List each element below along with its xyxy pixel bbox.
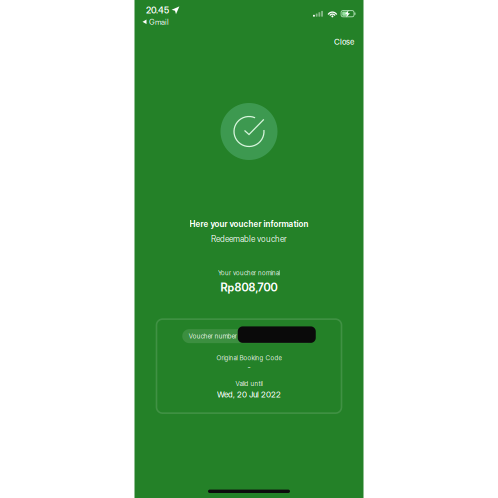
staticText: Close [334,37,354,47]
button[interactable]: Close [328,32,360,52]
staticText: Original Booking Code [216,354,281,362]
staticText: - [247,363,250,372]
staticText: Rp808,700 [220,281,277,294]
staticText: Valid until [235,380,262,388]
staticText: Here your voucher information [189,219,308,229]
staticText: Redeemable voucher [211,234,287,244]
staticText: Gmail [149,17,169,26]
staticText: 20.45 [146,5,169,16]
staticText: Voucher number : [189,332,240,340]
staticText: Wed, 20 Jul 2022 [217,390,281,399]
staticText: Your voucher nominal [218,269,280,277]
